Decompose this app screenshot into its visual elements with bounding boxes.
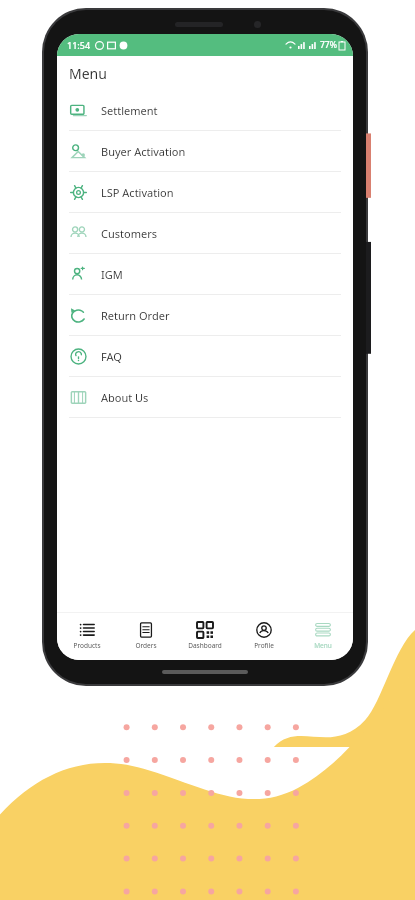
staticText: Products bbox=[73, 641, 101, 650]
button[interactable]: Dashboard bbox=[176, 618, 234, 654]
staticText: FAQ bbox=[101, 349, 122, 364]
button[interactable]: Return Order bbox=[57, 295, 353, 335]
staticText: Customers bbox=[101, 226, 157, 241]
button[interactable]: Menu bbox=[294, 618, 352, 654]
button[interactable]: Settlement bbox=[57, 90, 353, 130]
button[interactable]: Orders bbox=[117, 618, 175, 654]
staticText: 11:54 bbox=[67, 39, 91, 51]
staticText: Menu bbox=[314, 641, 332, 650]
staticText: Orders bbox=[135, 641, 157, 650]
staticText: Return Order bbox=[101, 308, 170, 323]
staticText: About Us bbox=[101, 390, 149, 405]
button[interactable]: Profile bbox=[235, 618, 293, 654]
button[interactable]: Buyer Activation bbox=[57, 131, 353, 171]
staticText: 77% bbox=[320, 39, 337, 51]
button[interactable]: Customers bbox=[57, 213, 353, 253]
staticText: Profile bbox=[254, 641, 274, 650]
staticText: Buyer Activation bbox=[101, 144, 186, 159]
button[interactable]: FAQ bbox=[57, 336, 353, 376]
button[interactable]: About Us bbox=[57, 377, 353, 417]
staticText: Settlement bbox=[101, 103, 158, 118]
staticText: Dashboard bbox=[188, 641, 222, 650]
staticText: Menu bbox=[69, 64, 107, 83]
button[interactable]: LSP Activation bbox=[57, 172, 353, 212]
button[interactable]: IGM bbox=[57, 254, 353, 294]
staticText: LSP Activation bbox=[101, 185, 174, 200]
button[interactable]: Products bbox=[58, 618, 116, 654]
staticText: IGM bbox=[101, 267, 123, 282]
